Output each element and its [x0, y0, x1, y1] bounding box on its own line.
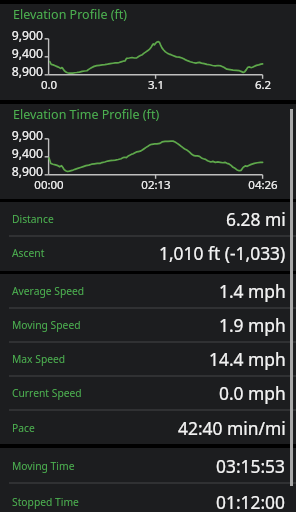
staticText: 00:00 [19, 177, 79, 193]
staticText: 14.4 mph [209, 347, 286, 371]
staticText: 03:15:53 [216, 454, 286, 478]
staticText: 0.0 [19, 77, 79, 93]
staticText: 42:40 min/mi [178, 416, 286, 440]
button[interactable]: Stopped Time [0, 484, 296, 512]
button[interactable]: Ascent [0, 236, 296, 270]
staticText: 0.0 mph [219, 381, 286, 405]
staticText: 04:26 [233, 177, 293, 193]
staticText: Distance [12, 212, 54, 226]
staticText: 9,900 [0, 127, 43, 144]
staticText: 6.2 [233, 77, 293, 93]
button[interactable]: Distance [0, 202, 296, 236]
button[interactable]: Average Speed [0, 274, 296, 308]
staticText: Current Speed [12, 386, 82, 400]
staticText: 6.28 mi [226, 207, 286, 231]
staticText: 1.9 mph [219, 313, 286, 337]
staticText: Average Speed [12, 284, 85, 298]
staticText: 02:13 [126, 177, 186, 193]
staticText: 01:12:00 [216, 490, 286, 512]
button[interactable]: Moving Time [0, 448, 296, 484]
staticText: 8,900 [0, 163, 43, 180]
staticText: 1.4 mph [219, 279, 286, 303]
staticText: 9,400 [0, 145, 43, 162]
button[interactable]: Max Speed [0, 342, 296, 376]
staticText: Elevation Time Profile (ft) [13, 106, 160, 123]
staticText: Moving Speed [12, 318, 81, 332]
button[interactable]: Pace [0, 411, 296, 445]
staticText: 8,900 [0, 63, 43, 80]
button[interactable]: Current Speed [0, 376, 296, 410]
staticText: Pace [12, 421, 35, 435]
staticText: Ascent [12, 246, 45, 260]
staticText: Max Speed [12, 352, 66, 366]
staticText: 9,400 [0, 45, 43, 62]
staticText: 9,900 [0, 27, 43, 44]
button[interactable]: Moving Speed [0, 308, 296, 342]
staticText: Stopped Time [12, 495, 79, 509]
staticText: Moving Time [12, 459, 75, 473]
button[interactable]: Elevation Time Profile (ft) [0, 104, 296, 199]
staticText: 3.1 [126, 77, 186, 93]
button[interactable]: Elevation Profile (ft) [0, 4, 296, 100]
staticText: 1,010 ft (-1,033) [159, 241, 286, 265]
staticText: Elevation Profile (ft) [13, 6, 128, 23]
